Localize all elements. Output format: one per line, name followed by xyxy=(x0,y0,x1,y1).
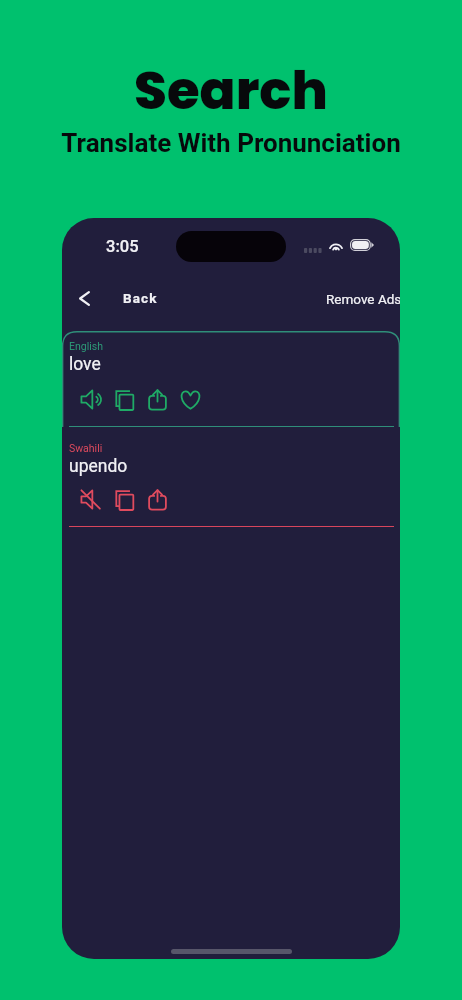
button[interactable]: Back xyxy=(69,285,172,311)
button[interactable]: Copy xyxy=(108,483,141,516)
button[interactable]: Add to favorites xyxy=(174,383,207,416)
staticText: Translate With Pronunciation xyxy=(61,128,401,158)
button[interactable]: Share xyxy=(141,383,174,416)
button[interactable]: Speak xyxy=(75,383,108,416)
staticText: 3:05 xyxy=(106,237,139,256)
staticText: Swahili xyxy=(69,442,103,454)
staticText: love xyxy=(69,354,101,375)
button[interactable]: Remove Ads xyxy=(314,281,400,317)
button[interactable]: Unmute xyxy=(75,483,108,516)
staticText: upendo xyxy=(69,456,128,477)
staticText: Back xyxy=(123,290,158,306)
staticText: Search xyxy=(134,53,328,127)
staticText: Remove Ads xyxy=(326,291,400,307)
staticText: English xyxy=(69,340,103,352)
button[interactable]: Copy xyxy=(108,383,141,416)
button[interactable]: Share xyxy=(141,483,174,516)
